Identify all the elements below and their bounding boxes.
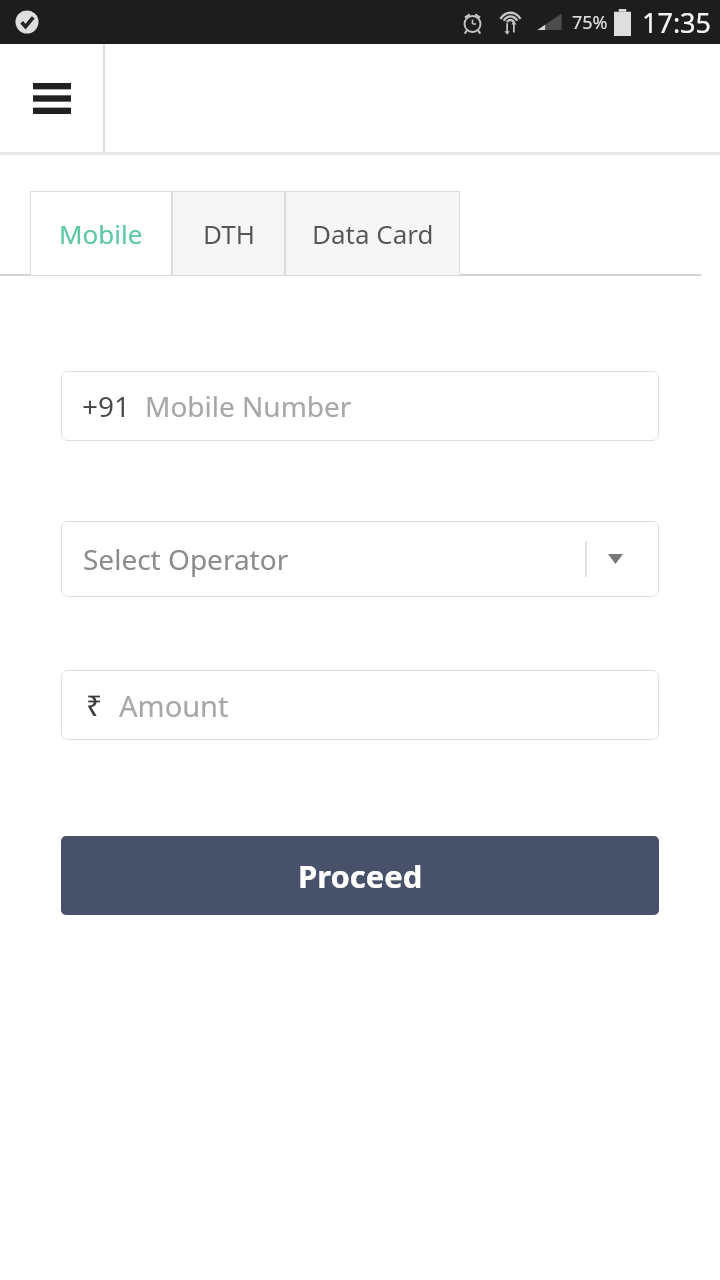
button[interactable]: Data Card [285,191,460,276]
staticText: Proceed [298,855,423,897]
staticText: Select Operator [83,540,585,578]
button[interactable]: ₹ [61,670,659,740]
button[interactable]: Open navigation menu [0,44,103,152]
staticText: Amount [119,686,229,725]
button[interactable]: Mobile [30,191,172,276]
staticText: 75% [572,10,608,35]
button[interactable]: Select Operator [61,521,659,597]
staticText: Data Card [312,216,434,251]
staticText: +91 [82,387,131,425]
button[interactable]: +91 [61,371,659,441]
button[interactable]: Proceed [61,836,659,915]
staticText: Mobile Number [145,387,352,425]
staticText: Mobile [59,216,143,251]
button[interactable]: DTH [172,191,285,276]
staticText: ₹ [86,686,103,724]
staticText: 17:35 [642,4,712,41]
staticText: DTH [203,216,255,251]
